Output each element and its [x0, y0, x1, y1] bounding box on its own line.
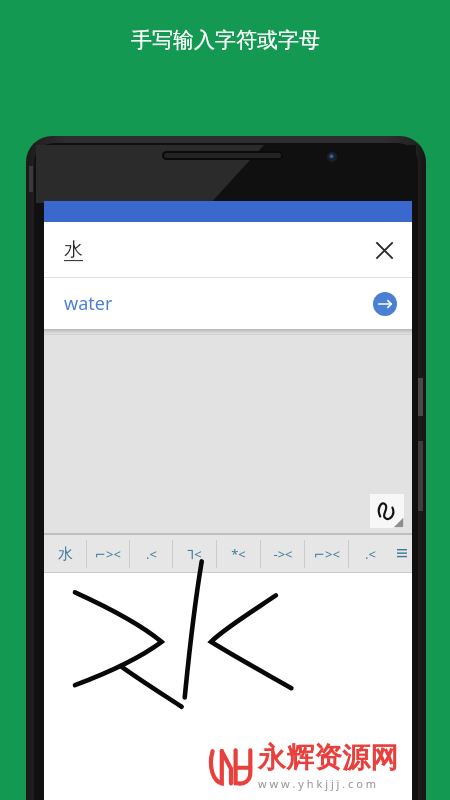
- staticText: .<: [365, 545, 376, 563]
- button[interactable]: Handwriting input: [370, 494, 404, 528]
- staticText: water: [64, 291, 113, 316]
- button[interactable]: .<: [349, 535, 392, 573]
- button[interactable]: More candidates: [392, 535, 412, 573]
- staticText: .<: [146, 545, 157, 563]
- button[interactable]: ⌐><: [305, 535, 348, 573]
- button[interactable]: ⌐><: [87, 535, 129, 573]
- button[interactable]: *<: [217, 535, 260, 573]
- staticText: *<: [231, 545, 246, 563]
- staticText: ⅂<: [187, 545, 202, 563]
- button[interactable]: Search water: [364, 283, 406, 325]
- staticText: 手写输入字符或字母: [131, 27, 320, 53]
- staticText: 水: [58, 545, 73, 564]
- staticText: -><: [273, 545, 293, 563]
- button[interactable]: .<: [130, 535, 172, 573]
- staticText: ⌐><: [95, 545, 121, 563]
- staticText: w w w . y h k j j j . c o m: [258, 776, 377, 791]
- staticText: 水: [64, 238, 83, 262]
- button[interactable]: 水: [44, 535, 86, 573]
- button[interactable]: Clear text: [362, 228, 406, 272]
- button[interactable]: -><: [261, 535, 304, 573]
- button[interactable]: ⅂<: [173, 535, 216, 573]
- button[interactable]: water: [44, 278, 412, 329]
- staticText: ⌐><: [314, 545, 340, 563]
- staticText: 永辉资源网: [258, 740, 398, 775]
